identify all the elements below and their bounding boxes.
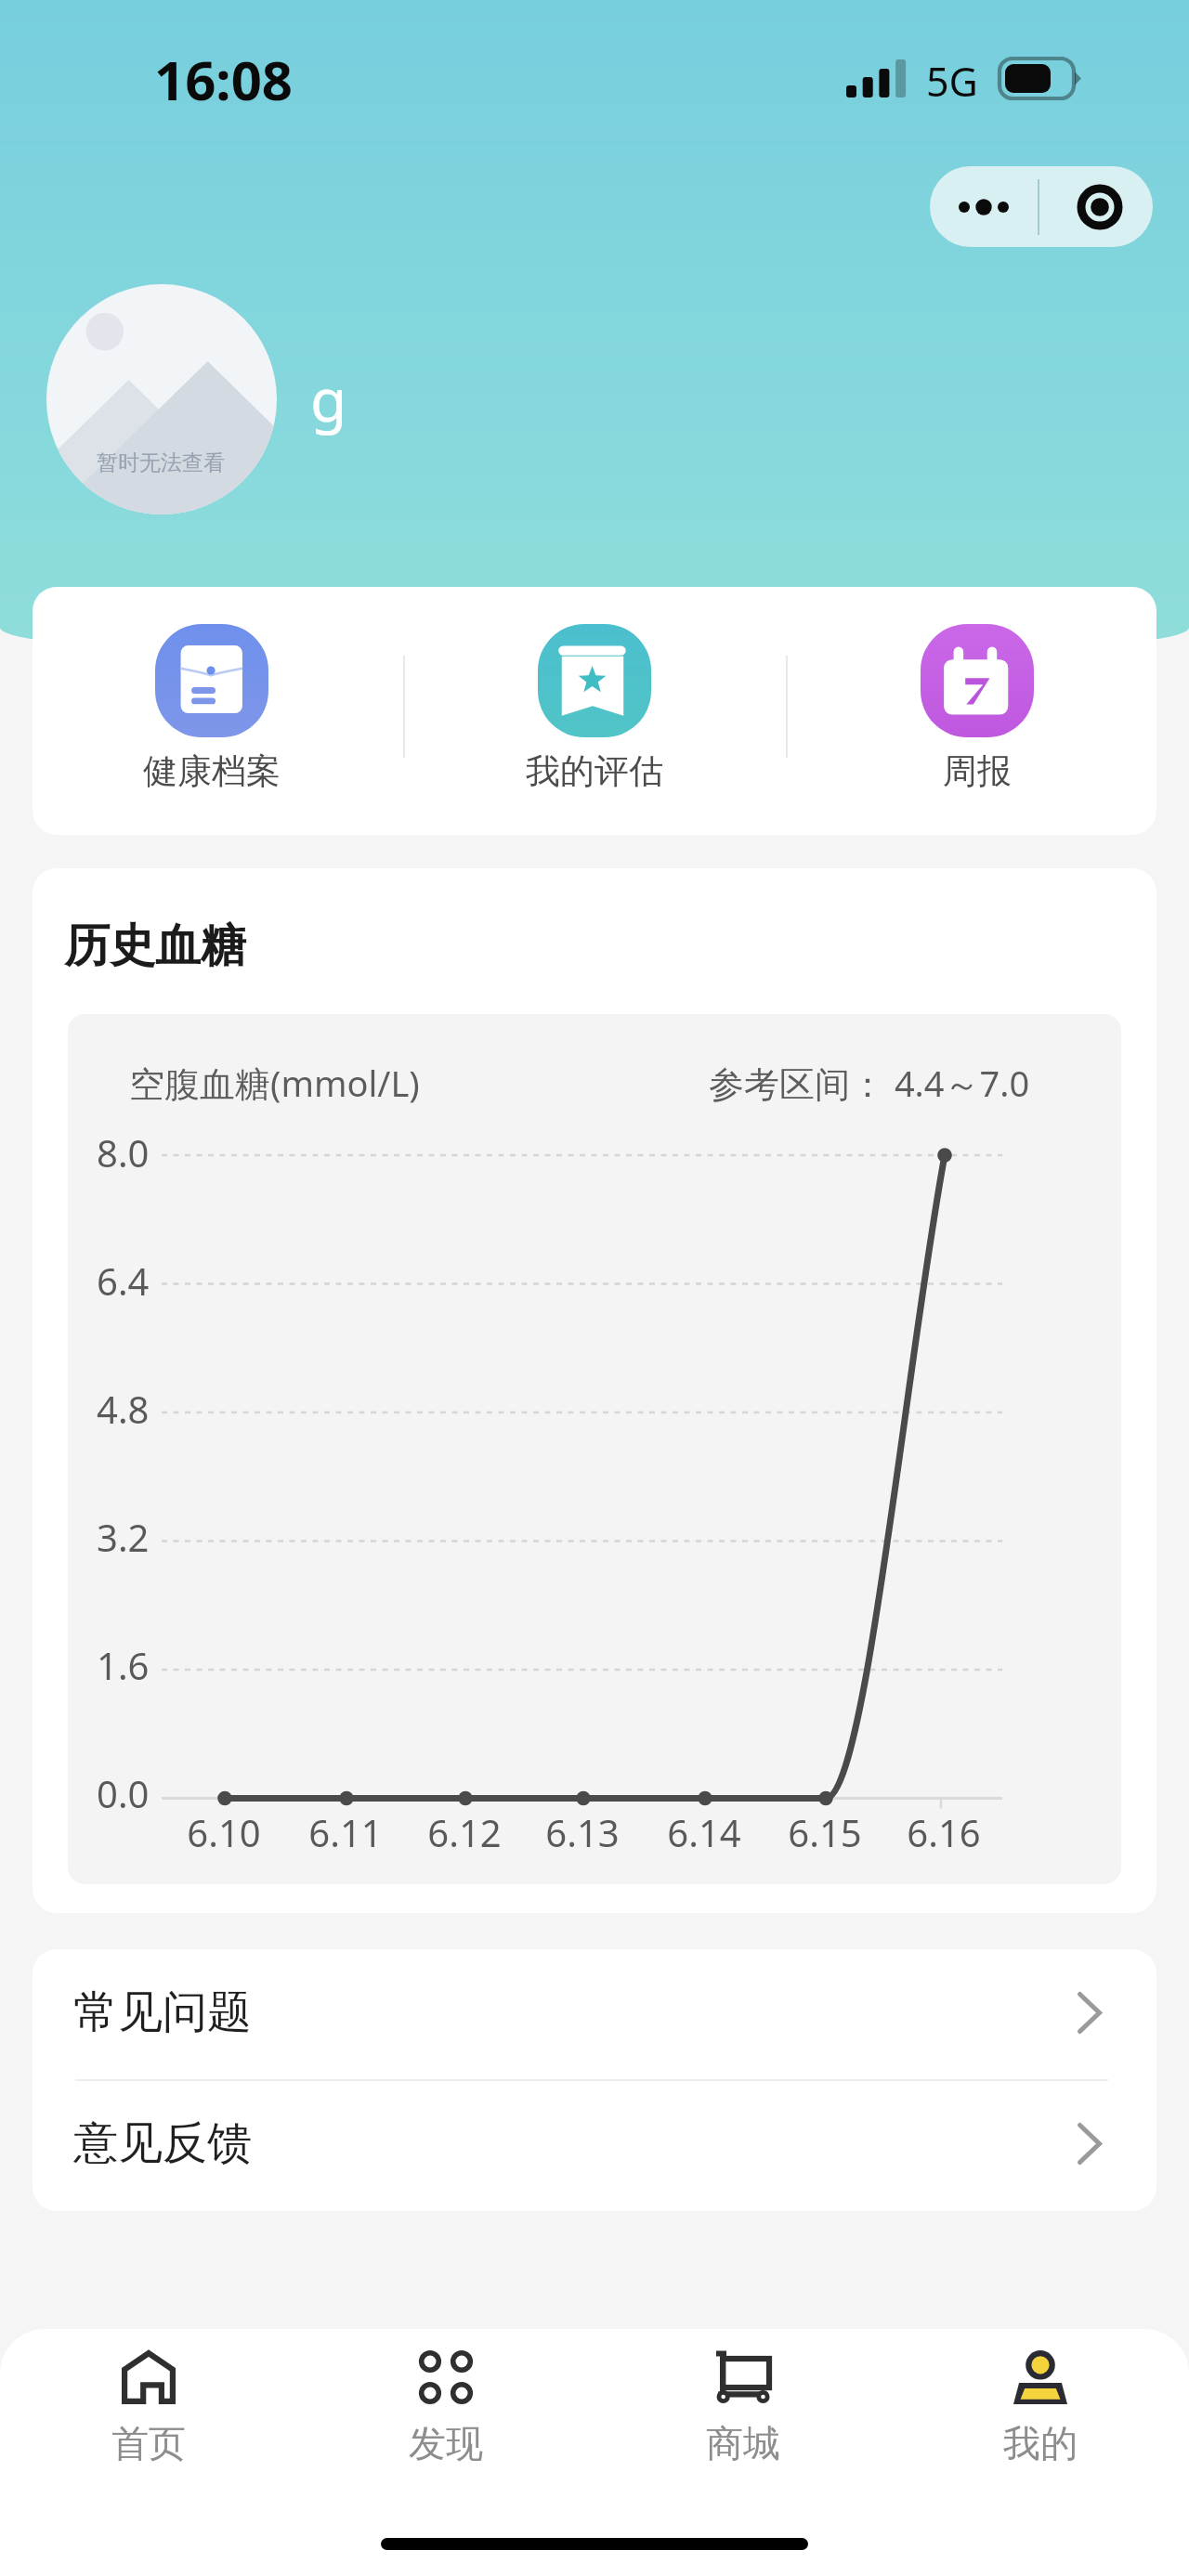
button[interactable]: 常见问题 xyxy=(33,1949,1156,2080)
button[interactable]: 我的评估 xyxy=(502,605,687,819)
button[interactable]: 首页 xyxy=(0,2329,297,2505)
staticText: 16:08 xyxy=(154,43,294,116)
button[interactable]: More options xyxy=(930,166,1153,247)
staticText: 6.10 xyxy=(187,1807,261,1857)
staticText: g xyxy=(310,358,347,439)
staticText: 6.12 xyxy=(427,1807,502,1857)
staticText: 我的评估 xyxy=(526,749,663,793)
button[interactable]: 我的 xyxy=(892,2329,1189,2505)
staticText: 暂时无法查看 xyxy=(97,449,225,476)
staticText: 发现 xyxy=(409,2420,483,2466)
staticText: 商城 xyxy=(706,2420,780,2466)
staticText: 参考区间： 4.4～7.0 xyxy=(709,1059,1030,1107)
staticText: 6.4 xyxy=(97,1255,150,1306)
staticText: 4.8 xyxy=(97,1384,150,1434)
staticText: 8.0 xyxy=(97,1127,150,1177)
staticText: 6.13 xyxy=(545,1807,620,1857)
staticText: 6.14 xyxy=(667,1807,741,1857)
staticText: 空腹血糖(mmol/L) xyxy=(129,1059,420,1107)
staticText: 常见问题 xyxy=(73,1984,252,2040)
staticText: 意见反馈 xyxy=(73,2115,252,2171)
staticText: 3.2 xyxy=(97,1512,150,1562)
button[interactable]: 发现 xyxy=(297,2329,594,2505)
staticText: 1.6 xyxy=(97,1640,150,1690)
staticText: 6.16 xyxy=(907,1807,981,1857)
button[interactable]: Avatar xyxy=(46,284,277,514)
staticText: 我的 xyxy=(1003,2420,1078,2466)
staticText: 周报 xyxy=(943,749,1012,793)
button[interactable]: 周报 xyxy=(884,605,1070,819)
staticText: 6.11 xyxy=(308,1807,383,1857)
staticText: 健康档案 xyxy=(143,749,281,793)
button[interactable]: 商城 xyxy=(594,2329,892,2505)
button[interactable]: 意见反馈 xyxy=(33,2080,1156,2211)
staticText: 首页 xyxy=(111,2420,186,2466)
staticText: 历史血糖 xyxy=(64,917,246,975)
staticText: 6.15 xyxy=(788,1807,862,1857)
staticText: 0.0 xyxy=(97,1768,150,1818)
button[interactable]: 健康档案 xyxy=(119,605,305,819)
staticText: 5G xyxy=(926,54,978,109)
